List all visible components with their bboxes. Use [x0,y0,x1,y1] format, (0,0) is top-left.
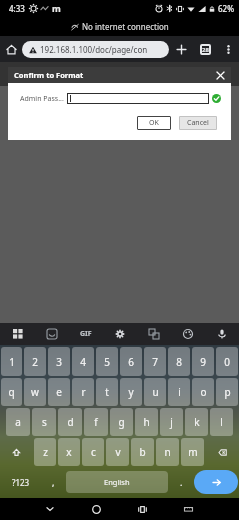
staticText: q [8,385,15,399]
button[interactable]: Hide keyboard [165,498,211,520]
button[interactable]: Voice input [205,323,239,345]
button[interactable]: b [131,438,154,466]
button[interactable]: e [48,378,70,406]
button[interactable]: Shift [1,438,32,466]
staticText: Cancel [187,118,209,128]
staticText: No internet connection [82,21,169,32]
staticText: a [15,415,21,429]
staticText: 192.168.1.100/doc/page/con [40,44,148,55]
staticText: 62% [218,3,234,14]
staticText: s [42,415,47,429]
staticText: k [194,415,200,429]
button[interactable]: 192.168.1.100/doc/page/con [22,41,169,58]
button[interactable]: . [170,468,192,496]
staticText: h [143,415,150,429]
button[interactable]: ?123 [1,468,40,496]
button[interactable]: Cancel [179,116,217,130]
button[interactable]: i [168,378,190,406]
button[interactable]: Settings [103,323,137,345]
button[interactable]: t [96,378,118,406]
button[interactable]: p [216,378,238,406]
staticText: ?123 [12,477,30,488]
button[interactable]: 0 [216,347,238,376]
staticText: 8 [176,355,182,369]
button[interactable]: 2 [24,347,46,376]
staticText: English [104,477,130,487]
button[interactable]: Translate [137,323,171,345]
button[interactable]: q [1,378,22,406]
button[interactable]: 9 [192,347,214,376]
button[interactable]: OK [137,116,171,130]
staticText: m [52,2,61,14]
button[interactable]: English [66,471,168,493]
button[interactable]: 5 [96,347,118,376]
button[interactable]: GIF [69,323,103,345]
staticText: e [56,385,62,399]
staticText: r [81,385,86,399]
button[interactable]: More options [217,38,239,60]
staticText: w [31,385,39,399]
button[interactable]: w [24,378,46,406]
button[interactable]: Close [213,68,227,82]
button[interactable]: l [210,408,233,436]
button[interactable]: d [58,408,82,436]
staticText: GIF [80,329,92,339]
staticText: c [91,445,96,459]
button[interactable]: m [181,438,204,466]
button[interactable]: v [106,438,129,466]
button[interactable]: Apps [0,323,35,345]
button[interactable]: 4 [72,347,94,376]
button[interactable]: a [6,408,30,436]
button[interactable]: j [160,408,183,436]
button[interactable]: Home [0,38,22,60]
button[interactable]: Home [73,498,119,520]
button[interactable]: n [156,438,179,466]
button[interactable]: 3 [48,347,70,376]
staticText: p [224,385,231,399]
staticText: 0 [224,355,230,369]
button[interactable]: Enter [194,470,238,494]
staticText: 4:33 [9,3,25,14]
staticText: m [188,445,198,459]
staticText: 4 [80,355,86,369]
button[interactable]: Tabs [193,37,217,61]
button[interactable]: y [120,378,142,406]
staticText: z [43,445,48,459]
button[interactable]: g [110,408,133,436]
button[interactable]: 8 [168,347,190,376]
button[interactable]: 6 [120,347,142,376]
staticText: 28 [202,46,209,54]
button[interactable]: New tab [169,37,193,61]
button[interactable]: , [42,468,64,496]
button[interactable]: k [185,408,208,436]
staticText: 5 [104,355,110,369]
staticText: Admin Pass... [20,94,64,104]
button[interactable]: Stickers [35,323,69,345]
staticText: b [139,445,146,459]
staticText: n [164,445,171,459]
staticText: f [94,415,98,429]
button[interactable]: 1 [1,347,22,376]
button[interactable]: Themes [171,323,205,345]
button[interactable]: c [82,438,104,466]
button[interactable]: h [135,408,158,436]
button[interactable]: u [144,378,166,406]
staticText: g [118,415,125,429]
button[interactable]: s [32,408,56,436]
staticText: . [180,476,183,488]
staticText: 2 [32,355,38,369]
button[interactable]: o [192,378,214,406]
button[interactable]: Back [27,498,73,520]
staticText: i [178,385,181,399]
button[interactable]: r [72,378,94,406]
button[interactable]: Backspace [206,438,238,466]
button[interactable]: 7 [144,347,166,376]
staticText: d [67,415,74,429]
staticText: j [170,415,173,429]
button[interactable]: f [84,408,108,436]
button[interactable]: Recent apps [119,498,165,520]
button[interactable]: z [34,438,56,466]
staticText: 1 [9,355,15,369]
button[interactable]: x [58,438,80,466]
staticText: y [128,385,134,399]
